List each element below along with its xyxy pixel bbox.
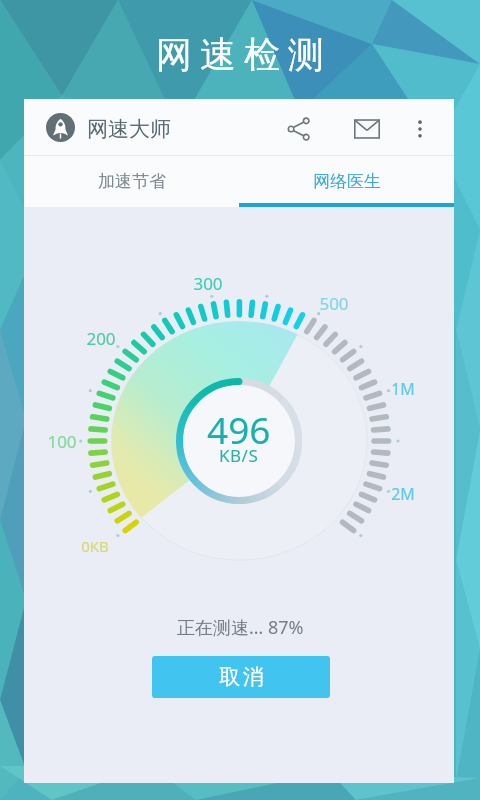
staticText: 取消 bbox=[218, 664, 265, 690]
staticText: 0KB bbox=[81, 536, 109, 556]
staticText: 1M bbox=[391, 378, 415, 400]
staticText: 496 bbox=[207, 404, 271, 446]
staticText: 2M bbox=[391, 483, 415, 505]
staticText: 500 bbox=[319, 292, 349, 315]
staticText: 100 bbox=[47, 430, 77, 453]
staticText: 网速大师 bbox=[87, 116, 171, 142]
staticText: 加速节省 bbox=[98, 171, 166, 192]
button[interactable]: 加速节省 bbox=[24, 156, 239, 207]
button[interactable]: 取消 bbox=[152, 656, 330, 698]
staticText: 网络医生 bbox=[313, 171, 381, 192]
staticText: 网速检测 bbox=[152, 32, 328, 77]
staticText: 300 bbox=[193, 272, 223, 295]
button[interactable]: Share bbox=[277, 107, 321, 151]
staticText: 200 bbox=[86, 327, 116, 350]
staticText: 正在测速… 87% bbox=[177, 615, 304, 640]
button[interactable]: 网络医生 bbox=[239, 156, 454, 207]
button[interactable]: More options bbox=[400, 109, 440, 149]
staticText: KB/S bbox=[219, 444, 259, 464]
button[interactable]: Mail bbox=[345, 107, 389, 151]
